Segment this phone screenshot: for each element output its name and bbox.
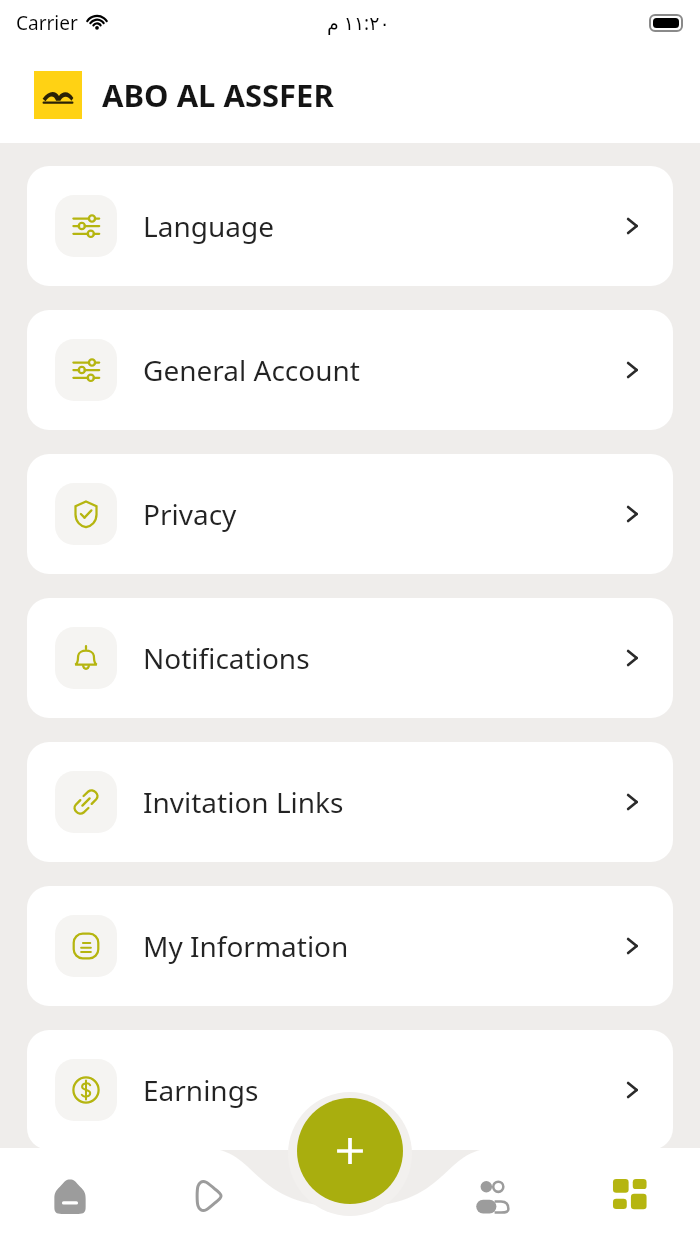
staticText: General Account: [143, 351, 360, 389]
button[interactable]: Invitation Links: [27, 742, 673, 862]
button[interactable]: Earnings: [27, 1030, 673, 1150]
button[interactable]: Language: [27, 166, 673, 286]
staticText: Language: [143, 207, 274, 245]
button[interactable]: Menu: [560, 1148, 700, 1244]
button[interactable]: Media: [140, 1148, 280, 1244]
staticText: My Information: [143, 927, 349, 965]
staticText: Privacy: [143, 495, 237, 533]
staticText: Invitation Links: [143, 783, 344, 821]
button[interactable]: General Account: [27, 310, 673, 430]
staticText: ١١:٢٠ م: [327, 10, 390, 36]
staticText: ABO AL ASSFER: [102, 74, 334, 116]
button[interactable]: Notifications: [27, 598, 673, 718]
staticText: Carrier: [16, 10, 78, 36]
button[interactable]: Contacts: [420, 1148, 560, 1244]
button[interactable]: Add: [297, 1098, 403, 1204]
button[interactable]: My Information: [27, 886, 673, 1006]
staticText: Earnings: [143, 1071, 259, 1109]
staticText: Notifications: [143, 639, 310, 677]
button[interactable]: Privacy: [27, 454, 673, 574]
button[interactable]: Home: [0, 1148, 140, 1244]
